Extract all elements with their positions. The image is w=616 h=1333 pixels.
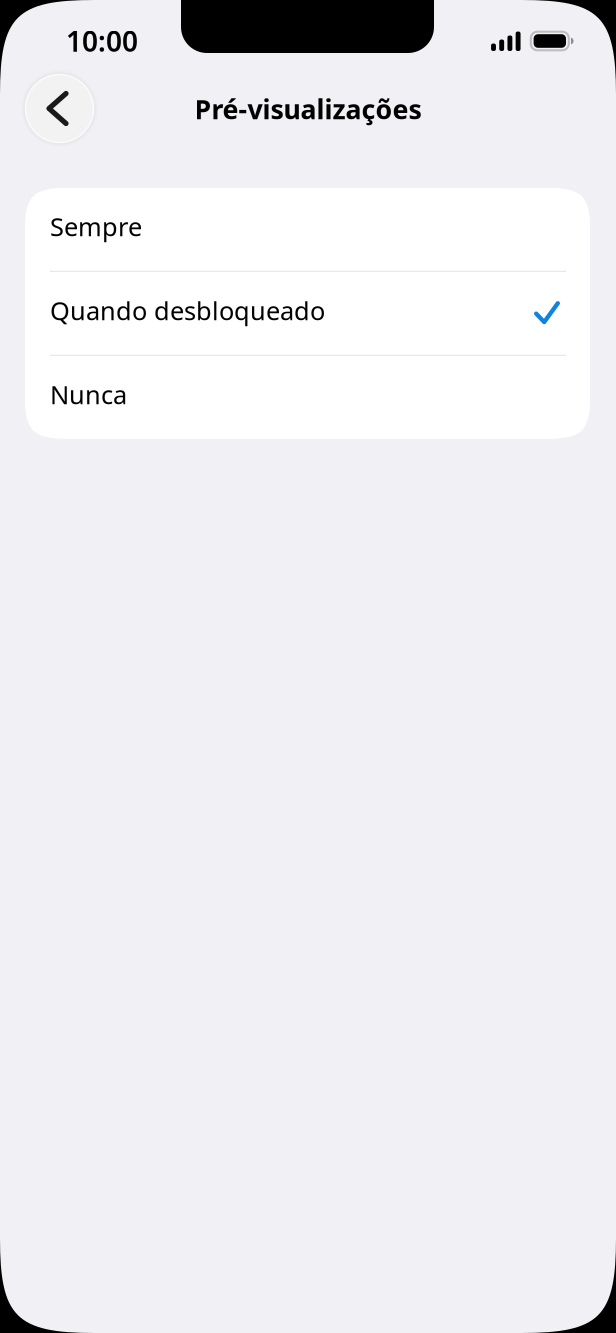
staticText: Quando desbloqueado xyxy=(50,293,325,327)
staticText: Pré-visualizações xyxy=(194,91,421,127)
button[interactable]: Quando desbloqueado xyxy=(25,272,590,355)
button[interactable]: Sempre xyxy=(25,188,590,271)
staticText: Sempre xyxy=(50,209,142,243)
button[interactable]: Back xyxy=(20,69,98,147)
staticText: Nunca xyxy=(50,377,127,411)
staticText: 10:00 xyxy=(66,22,138,60)
button[interactable]: Nunca xyxy=(25,356,590,439)
